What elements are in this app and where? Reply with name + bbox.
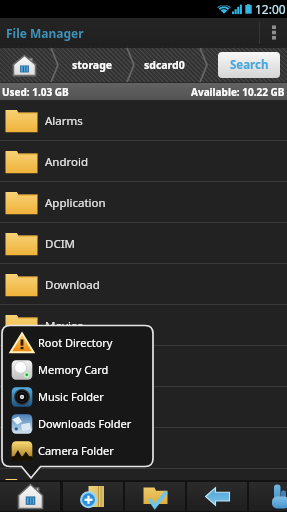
- staticText: Download: [45, 277, 100, 293]
- button[interactable]: Back: [187, 482, 247, 511]
- button[interactable]: Application: [0, 182, 287, 223]
- staticText: Memory Card: [38, 362, 109, 377]
- staticText: Used: 1.03 GB: [2, 85, 69, 99]
- button[interactable]: storage: [72, 58, 113, 72]
- button[interactable]: Search: [218, 52, 280, 78]
- staticText: Pictures: [45, 441, 89, 457]
- button[interactable]: New folder: [63, 482, 123, 511]
- button[interactable]: Home: [0, 482, 60, 511]
- button[interactable]: Root Directory: [2, 329, 153, 356]
- button[interactable]: Movies: [0, 305, 287, 346]
- button[interactable]: Touch: [249, 482, 287, 511]
- button[interactable]: Memory Card: [2, 356, 153, 383]
- staticText: 12:00: [255, 1, 286, 17]
- staticText: Music Folder: [38, 389, 104, 404]
- button[interactable]: Alarms: [0, 100, 287, 141]
- staticText: Search: [230, 57, 269, 73]
- button[interactable]: Music: [0, 346, 287, 387]
- staticText: Music: [45, 359, 77, 375]
- staticText: File Manager: [6, 25, 84, 41]
- button[interactable]: Pictures: [0, 428, 287, 469]
- button[interactable]: sdcard0: [144, 58, 185, 72]
- button[interactable]: Podcasts: [0, 469, 287, 510]
- button[interactable]: Notifications: [0, 387, 287, 428]
- button[interactable]: Download: [0, 264, 287, 305]
- staticText: Android: [45, 154, 89, 170]
- staticText: Available: 10.22 GB: [191, 85, 285, 99]
- button[interactable]: Music Folder: [2, 383, 153, 410]
- staticText: Notifications: [45, 400, 114, 416]
- staticText: Podcasts: [45, 482, 94, 498]
- staticText: Downloads Folder: [38, 416, 132, 431]
- staticText: Alarms: [45, 113, 83, 129]
- button[interactable]: Home: [0, 47, 48, 83]
- staticText: Movies: [45, 318, 83, 334]
- button[interactable]: Select: [125, 482, 185, 511]
- button[interactable]: Android: [0, 141, 287, 182]
- staticText: Camera Folder: [38, 443, 114, 458]
- button[interactable]: More options: [260, 18, 287, 47]
- staticText: DCIM: [45, 236, 75, 252]
- button[interactable]: Camera Folder: [2, 437, 153, 464]
- staticText: Application: [45, 195, 106, 211]
- button[interactable]: Downloads Folder: [2, 410, 153, 437]
- staticText: Root Directory: [38, 335, 113, 350]
- button[interactable]: DCIM: [0, 223, 287, 264]
